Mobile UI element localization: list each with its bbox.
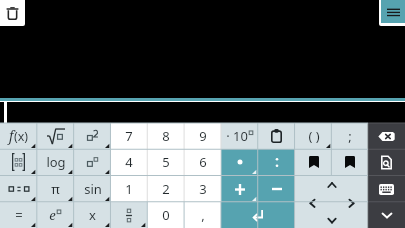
button[interactable]: π [37, 176, 74, 202]
button[interactable]: 9 [184, 123, 221, 149]
button[interactable]: 6 [184, 149, 221, 175]
staticText: 3 [199, 180, 207, 198]
staticText: 7 [125, 127, 133, 145]
staticText: sin [84, 180, 102, 198]
button[interactable]: log [37, 149, 74, 175]
staticText: , [201, 206, 205, 224]
button[interactable]: = [0, 202, 37, 228]
staticText: = [15, 206, 23, 224]
button[interactable]: Multiply [221, 149, 258, 175]
staticText: x [89, 206, 96, 224]
staticText: 1 [125, 180, 133, 198]
staticText: (x) [14, 128, 29, 145]
button[interactable]: x [74, 202, 111, 228]
button[interactable]: Clear [0, 0, 25, 26]
button[interactable]: 7 [110, 123, 147, 149]
staticText: 2 [162, 180, 170, 198]
staticText: 0 [162, 206, 170, 224]
button[interactable] [37, 123, 74, 149]
button[interactable]: 8 [147, 123, 184, 149]
button[interactable]: Menu [381, 0, 405, 23]
staticText: 9 [199, 127, 207, 145]
button[interactable]: 1 [110, 176, 147, 202]
staticText: · 10 [226, 127, 248, 145]
button[interactable] [0, 149, 37, 175]
staticText: e [49, 206, 56, 224]
staticText: 4 [125, 153, 133, 171]
staticText: π [51, 180, 60, 198]
button[interactable]: ( ) [295, 123, 332, 149]
button[interactable] [0, 176, 37, 202]
button[interactable] [110, 202, 147, 228]
staticText: 8 [162, 127, 170, 145]
staticText: f [9, 127, 14, 145]
button[interactable]: Paste [258, 123, 295, 149]
button[interactable]: Plus [221, 176, 258, 202]
button[interactable]: Bookmark [295, 149, 332, 175]
staticText: ( ) [308, 127, 320, 145]
button[interactable]: 5 [147, 149, 184, 175]
staticText: 6 [199, 153, 207, 171]
button[interactable] [74, 149, 111, 175]
staticText: 5 [162, 153, 170, 171]
button[interactable]: e [37, 202, 74, 228]
button[interactable]: Bookmark [331, 149, 368, 175]
button[interactable]: Divide [258, 149, 295, 175]
button[interactable] [295, 176, 369, 228]
button[interactable]: 0 [147, 202, 184, 228]
button[interactable]: Enter [221, 202, 295, 228]
button[interactable]: · 10 [221, 123, 258, 149]
button[interactable]: Backspace [368, 123, 405, 149]
button[interactable]: sin [74, 176, 111, 202]
button[interactable]: Search document [368, 149, 405, 175]
button[interactable]: ; [331, 123, 368, 149]
button[interactable]: 4 [110, 149, 147, 175]
button[interactable]: Hide keyboard [368, 202, 405, 228]
button[interactable]: 2 [147, 176, 184, 202]
staticText: ; [348, 127, 352, 145]
button[interactable] [74, 123, 111, 149]
button[interactable]: , [184, 202, 221, 228]
button[interactable]: Minus [258, 176, 295, 202]
staticText: log [46, 153, 66, 171]
button[interactable]: Keyboard [368, 176, 405, 202]
button[interactable]: f [0, 123, 37, 149]
button[interactable]: 3 [184, 176, 221, 202]
